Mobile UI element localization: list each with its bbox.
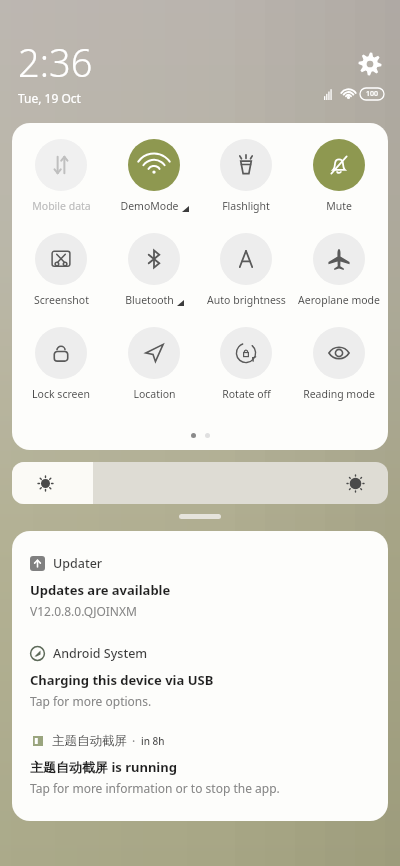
button[interactable]: Auto brightness bbox=[202, 233, 290, 307]
staticText: 2:36 bbox=[18, 36, 93, 88]
staticText: Mute bbox=[326, 199, 352, 213]
staticText: Android System bbox=[53, 645, 148, 662]
staticText: Updater bbox=[53, 555, 103, 572]
button[interactable]: Bluetooth bbox=[110, 233, 198, 307]
staticText: Reading mode bbox=[303, 387, 375, 401]
button[interactable]: Reading mode bbox=[295, 327, 383, 401]
button[interactable]: Updater bbox=[30, 555, 370, 619]
button[interactable]: Mobile data bbox=[17, 139, 105, 213]
staticText: Updates are available bbox=[30, 581, 171, 599]
button[interactable]: Mute bbox=[295, 139, 383, 213]
button[interactable]: Settings bbox=[358, 52, 382, 76]
button[interactable]: Location bbox=[110, 327, 198, 401]
staticText: Mobile data bbox=[32, 199, 91, 213]
button[interactable]: Aeroplane mode bbox=[295, 233, 383, 307]
staticText: in 8h bbox=[141, 734, 165, 748]
staticText: Bluetooth bbox=[125, 293, 174, 307]
staticText: 主题自动截屏 is running bbox=[30, 758, 177, 776]
staticText: DemoMode bbox=[120, 199, 179, 213]
staticText: Screenshot bbox=[34, 293, 89, 307]
staticText: 100 bbox=[366, 89, 379, 99]
button[interactable]: Flashlight bbox=[202, 139, 290, 213]
button[interactable]: Lock screen bbox=[17, 327, 105, 401]
staticText: Tue, 19 Oct bbox=[18, 90, 81, 106]
staticText: Tap for more options. bbox=[30, 693, 152, 709]
staticText: Aeroplane mode bbox=[298, 293, 380, 307]
staticText: Location bbox=[133, 387, 176, 401]
staticText: Rotate off bbox=[222, 387, 271, 401]
button[interactable]: Screenshot bbox=[17, 233, 105, 307]
staticText: Tap for more information or to stop the … bbox=[30, 780, 280, 796]
button[interactable]: DemoMode bbox=[110, 139, 198, 213]
staticText: V12.0.8.0.QJOINXM bbox=[30, 603, 137, 619]
staticText: Charging this device via USB bbox=[30, 671, 214, 689]
staticText: Auto brightness bbox=[207, 293, 286, 307]
staticText: Lock screen bbox=[32, 387, 90, 401]
button[interactable]: Android System bbox=[30, 645, 370, 709]
staticText: 主题自动截屏 bbox=[52, 733, 127, 749]
staticText: Flashlight bbox=[222, 199, 270, 213]
button[interactable]: 主题自动截屏 bbox=[30, 733, 370, 796]
button[interactable]: Rotate off bbox=[202, 327, 290, 401]
staticText: · bbox=[132, 733, 136, 749]
button[interactable]: Brightness bbox=[12, 462, 388, 504]
